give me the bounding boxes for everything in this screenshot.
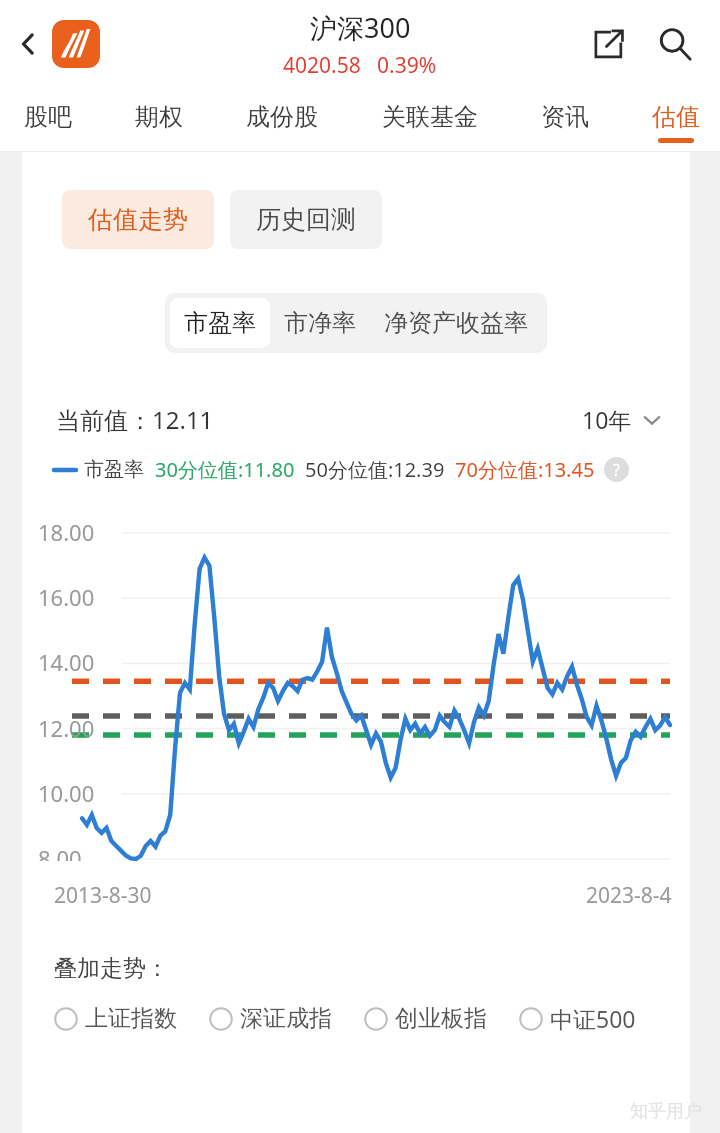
staticText: 成份股 (246, 102, 318, 132)
staticText: 市盈率 (184, 308, 256, 338)
staticText: 估值 (652, 102, 700, 132)
staticText: 叠加走势： (54, 954, 169, 983)
button[interactable]: 期权 (135, 88, 183, 152)
staticText: 10.00 (38, 778, 95, 808)
button[interactable]: Back (6, 22, 50, 66)
staticText: 知乎用户 (630, 1100, 702, 1123)
staticText: 市盈率 (84, 457, 144, 482)
staticText: 期权 (135, 102, 183, 132)
button[interactable]: App logo (52, 20, 100, 68)
staticText: 30分位值:11.80 (155, 456, 295, 483)
staticText: 净资产收益率 (384, 308, 528, 338)
button[interactable]: 估值走势 (62, 190, 214, 249)
staticText: 10年 (582, 404, 632, 435)
button[interactable]: 成份股 (246, 88, 318, 152)
staticText: 估值走势 (88, 204, 188, 235)
button[interactable]: Share (584, 19, 634, 69)
staticText: 当前值：12.11 (56, 403, 214, 436)
staticText: 14.00 (38, 647, 95, 677)
button[interactable]: 中证500 (519, 1003, 636, 1034)
staticText: 18.00 (38, 517, 95, 547)
button[interactable]: 关联基金 (382, 88, 478, 152)
staticText: 关联基金 (382, 102, 478, 132)
button[interactable]: Search (648, 17, 702, 71)
staticText: 市净率 (284, 308, 356, 338)
staticText: ? (613, 459, 620, 481)
staticText: 8.00 (38, 843, 82, 861)
staticText: 深证成指 (240, 1004, 332, 1033)
button[interactable]: Help (604, 457, 629, 482)
button[interactable]: 估值 (652, 88, 700, 152)
button[interactable]: 股吧 (24, 88, 72, 152)
button[interactable]: 资讯 (541, 88, 589, 152)
staticText: 沪深300 (310, 9, 411, 46)
staticText: 12.00 (38, 713, 95, 743)
staticText: 16.00 (38, 582, 95, 612)
staticText: 70分位值:13.45 (455, 456, 595, 483)
button[interactable]: 上证指数 (54, 1004, 177, 1033)
button[interactable]: 深证成指 (209, 1004, 332, 1033)
staticText: 历史回测 (256, 204, 356, 235)
staticText: 创业板指 (395, 1004, 487, 1033)
button[interactable]: 净资产收益率 (370, 298, 542, 348)
button[interactable]: 创业板指 (364, 1004, 487, 1033)
button[interactable]: 市净率 (270, 298, 370, 348)
staticText: 2023-8-4 (586, 881, 672, 910)
staticText: 2013-8-30 (54, 881, 152, 910)
staticText: 中证500 (550, 1003, 636, 1034)
button[interactable]: 市盈率 (170, 298, 270, 348)
staticText: 4020.58 (283, 51, 361, 80)
staticText: 0.39% (377, 51, 437, 80)
staticText: 股吧 (24, 102, 72, 132)
button[interactable]: 历史回测 (230, 190, 382, 249)
staticText: 上证指数 (85, 1004, 177, 1033)
staticText: 50分位值:12.39 (305, 456, 445, 483)
button[interactable]: 10年 (582, 404, 662, 435)
staticText: 资讯 (541, 102, 589, 132)
